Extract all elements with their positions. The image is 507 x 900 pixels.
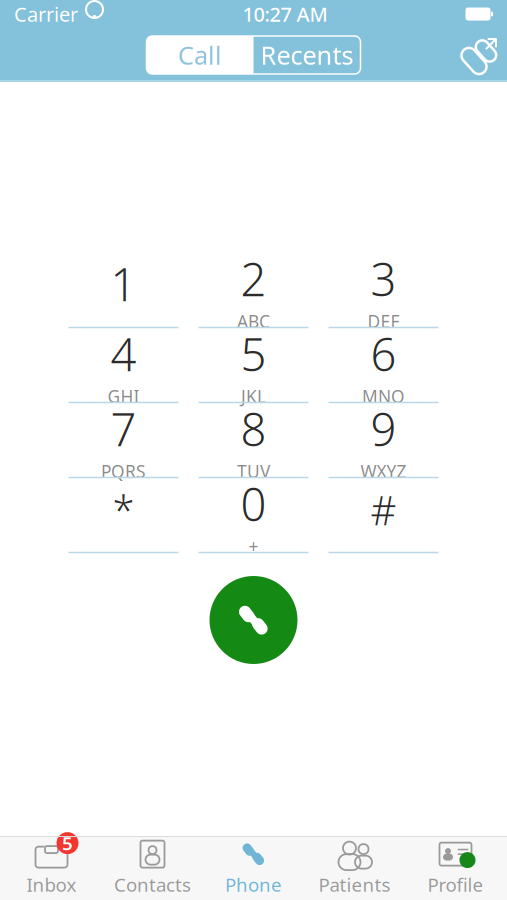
- staticText: 1: [110, 254, 136, 314]
- staticText: 4: [110, 324, 136, 384]
- button[interactable]: 7: [64, 404, 182, 479]
- staticText: #: [370, 483, 396, 536]
- staticText: MNO: [362, 385, 405, 408]
- button[interactable]: Profile: [405, 837, 506, 899]
- staticText: 6: [370, 324, 396, 384]
- staticText: 5: [62, 831, 73, 855]
- staticText: Carrier: [14, 1, 78, 27]
- staticText: Profile: [427, 872, 483, 897]
- button[interactable]: Patients: [304, 837, 405, 899]
- staticText: Recents: [260, 38, 353, 72]
- button[interactable]: #: [324, 479, 442, 554]
- button[interactable]: 0: [194, 479, 312, 554]
- button[interactable]: New outgoing call: [451, 28, 507, 82]
- button[interactable]: 6: [324, 329, 442, 404]
- button[interactable]: 9: [324, 404, 442, 479]
- staticText: JKL: [241, 385, 266, 408]
- button[interactable]: Phone: [203, 837, 304, 899]
- staticText: PQRS: [101, 460, 146, 483]
- staticText: 2: [240, 249, 266, 309]
- staticText: 8: [240, 399, 266, 459]
- staticText: 10:27 AM: [242, 1, 327, 27]
- staticText: 7: [110, 399, 136, 459]
- staticText: 5: [240, 324, 266, 384]
- staticText: DEF: [367, 310, 399, 333]
- staticText: Call: [178, 38, 222, 72]
- button[interactable]: Call: [146, 36, 253, 74]
- button[interactable]: Call: [209, 576, 297, 664]
- button[interactable]: 5: [194, 329, 312, 404]
- staticText: +: [248, 535, 258, 558]
- staticText: ABC: [237, 310, 270, 333]
- staticText: *: [112, 483, 134, 536]
- staticText: GHI: [107, 385, 139, 408]
- staticText: 0: [240, 474, 266, 534]
- staticText: 9: [370, 399, 396, 459]
- button[interactable]: 3: [324, 254, 442, 329]
- staticText: TUV: [237, 460, 270, 483]
- button[interactable]: 1: [64, 254, 182, 329]
- button[interactable]: 8: [194, 404, 312, 479]
- staticText: 3: [370, 249, 396, 309]
- button[interactable]: 5: [1, 837, 102, 899]
- staticText: Patients: [318, 872, 390, 897]
- staticText: WXYZ: [360, 460, 406, 483]
- button[interactable]: Recents: [253, 36, 360, 74]
- button[interactable]: Contacts: [102, 837, 203, 899]
- button[interactable]: *: [64, 479, 182, 554]
- staticText: Phone: [225, 872, 282, 897]
- button[interactable]: 4: [64, 329, 182, 404]
- button[interactable]: 2: [194, 254, 312, 329]
- staticText: Contacts: [114, 872, 191, 897]
- staticText: Inbox: [26, 872, 76, 897]
